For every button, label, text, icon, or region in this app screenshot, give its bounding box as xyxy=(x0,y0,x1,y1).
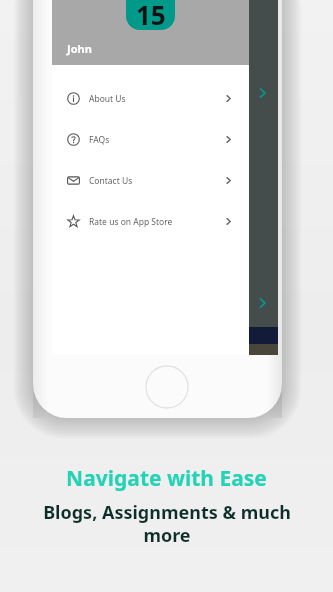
button[interactable]: Contact Us xyxy=(52,160,249,201)
staticText: FAQs xyxy=(89,134,110,146)
button[interactable]: 15 xyxy=(126,0,175,30)
staticText: Contact Us xyxy=(89,175,133,187)
button[interactable]: Open xyxy=(256,295,272,311)
staticText: John xyxy=(67,41,92,56)
button[interactable]: Open xyxy=(256,85,272,101)
button[interactable]: About Us xyxy=(52,78,249,119)
staticText: 15 xyxy=(136,0,166,30)
button[interactable]: Rate us on App Store xyxy=(52,201,249,242)
staticText: About Us xyxy=(89,93,126,105)
staticText: Blogs, Assignments & much more xyxy=(42,500,292,547)
staticText: Navigate with Ease xyxy=(66,464,267,493)
button[interactable]: Home xyxy=(145,365,189,409)
staticText: Rate us on App Store xyxy=(89,216,173,228)
button[interactable]: FAQs xyxy=(52,119,249,160)
